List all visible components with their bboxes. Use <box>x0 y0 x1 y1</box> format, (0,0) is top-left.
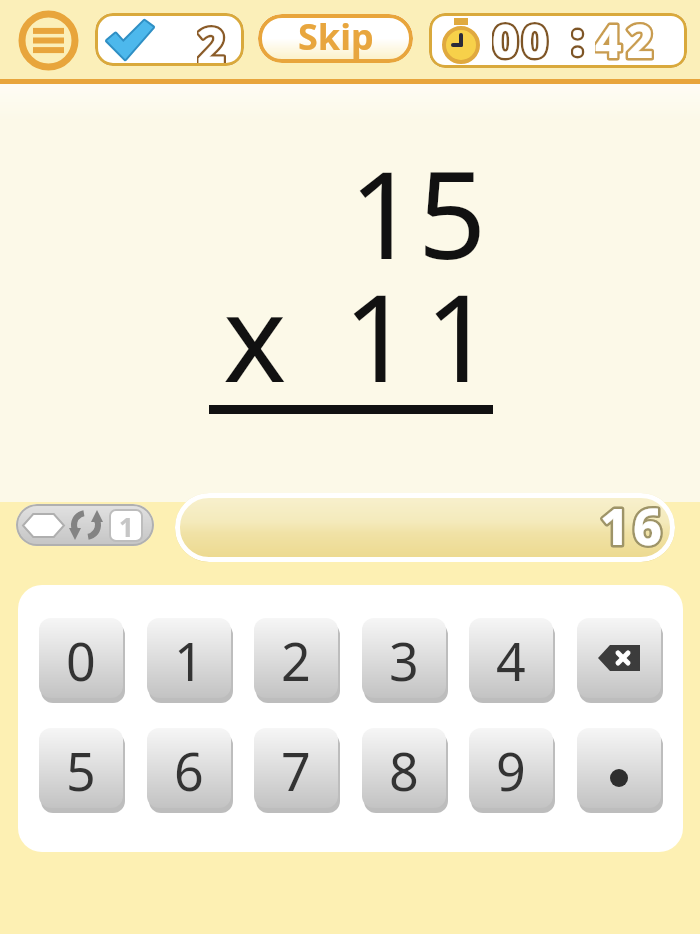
staticText: 42 <box>595 13 659 64</box>
button[interactable]: 7 <box>254 728 338 808</box>
staticText: 7 <box>281 735 311 806</box>
staticText: 42 <box>595 13 659 64</box>
staticText: 16 <box>600 493 666 560</box>
staticText: : <box>571 13 585 62</box>
button[interactable]: 4 <box>469 618 553 698</box>
button[interactable]: 1 <box>16 504 154 546</box>
button[interactable] <box>18 10 79 71</box>
button[interactable]: 5 <box>39 728 123 808</box>
staticText: 1 <box>119 509 134 544</box>
staticText: x <box>223 254 287 417</box>
staticText: Skip <box>298 14 374 61</box>
staticText: 6 <box>174 735 204 806</box>
button[interactable]: Skip <box>258 14 413 63</box>
staticText: 2 <box>281 625 311 696</box>
staticText: 9 <box>496 735 526 806</box>
staticText: 2 <box>197 13 226 65</box>
button[interactable]: 2 <box>95 13 244 66</box>
button[interactable]: 2 <box>254 618 338 698</box>
button[interactable]: 8 <box>362 728 446 808</box>
staticText: 1 <box>174 625 204 696</box>
button[interactable]: 16 <box>175 493 675 562</box>
button[interactable]: 1 <box>147 618 231 698</box>
staticText: 0 <box>66 625 96 696</box>
button[interactable] <box>577 618 661 698</box>
staticText: 5 <box>66 735 96 806</box>
staticText: 8 <box>389 735 419 806</box>
button[interactable]: 00 <box>429 13 687 68</box>
staticText: 00 <box>492 13 552 64</box>
staticText: 15 <box>349 131 487 294</box>
staticText: 00 <box>492 13 552 64</box>
button[interactable] <box>577 728 661 808</box>
staticText: : <box>571 13 585 62</box>
button[interactable]: 9 <box>469 728 553 808</box>
staticText: 11 <box>343 254 507 417</box>
button[interactable]: 6 <box>147 728 231 808</box>
staticText: 3 <box>389 625 419 696</box>
button[interactable]: 0 <box>39 618 123 698</box>
staticText: 16 <box>600 493 666 560</box>
staticText: 2 <box>197 13 226 65</box>
button[interactable]: 3 <box>362 618 446 698</box>
staticText: 4 <box>496 625 526 696</box>
